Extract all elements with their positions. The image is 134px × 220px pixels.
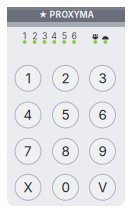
staticText: 9 <box>98 143 106 159</box>
button[interactable]: 1 <box>15 65 41 91</box>
staticText: ★ PROXYMA <box>38 9 93 20</box>
button[interactable]: X <box>15 174 41 200</box>
button[interactable]: 8 <box>52 138 78 164</box>
staticText: 2 <box>61 70 69 86</box>
button[interactable]: 0 <box>52 174 78 200</box>
button[interactable]: 6 <box>89 102 115 128</box>
staticText: 7 <box>24 143 32 159</box>
staticText: 5 <box>61 107 69 123</box>
staticText: 4 <box>23 107 32 123</box>
staticText: 6 <box>71 31 76 41</box>
staticText: 4 <box>51 31 57 41</box>
button[interactable]: 5 <box>52 102 78 128</box>
staticText: 3 <box>42 31 47 41</box>
staticText: 6 <box>98 107 106 123</box>
staticText: V <box>98 179 107 195</box>
button[interactable]: 3 <box>89 65 115 91</box>
button[interactable]: 4 <box>15 102 41 128</box>
staticText: 5 <box>62 31 67 41</box>
button[interactable]: 7 <box>15 138 41 164</box>
staticText: 3 <box>98 70 106 86</box>
button[interactable]: 9 <box>89 138 115 164</box>
staticText: 2 <box>32 31 37 41</box>
staticText: X <box>23 179 32 195</box>
button[interactable]: 2 <box>52 65 78 91</box>
staticText: 1 <box>23 31 27 41</box>
staticText: 0 <box>61 179 69 195</box>
button[interactable]: V <box>89 174 115 200</box>
staticText: 1 <box>25 70 30 86</box>
staticText: 8 <box>61 143 69 159</box>
